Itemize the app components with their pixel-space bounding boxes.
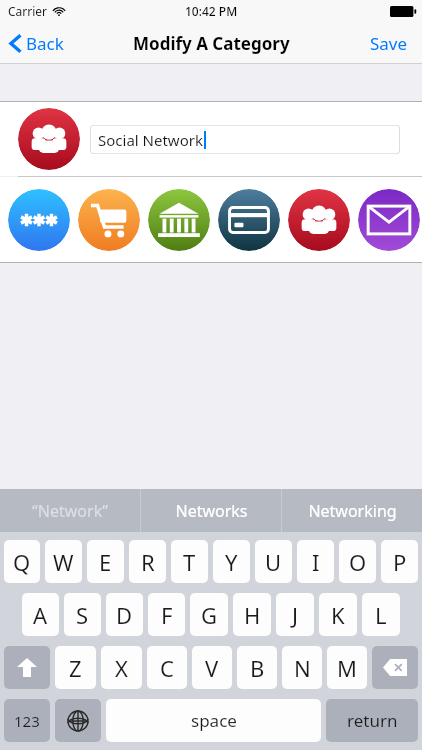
staticText: Y: [225, 547, 238, 577]
button[interactable]: O: [339, 540, 376, 583]
staticText: H: [244, 600, 261, 630]
button[interactable]: Shift: [4, 646, 50, 689]
staticText: Carrier: [8, 3, 48, 19]
staticText: I: [312, 547, 320, 577]
button[interactable]: U: [255, 540, 292, 583]
button[interactable]: Card category: [218, 189, 280, 251]
button[interactable]: E: [87, 540, 124, 583]
button[interactable]: Category icon: [18, 108, 80, 170]
staticText: W: [53, 547, 74, 577]
staticText: S: [76, 600, 89, 630]
staticText: E: [99, 547, 112, 577]
button[interactable]: T: [171, 540, 208, 583]
button[interactable]: H: [233, 593, 271, 636]
staticText: J: [292, 600, 299, 630]
staticText: space: [191, 709, 237, 732]
staticText: V: [205, 653, 219, 683]
button[interactable]: Networks: [141, 489, 281, 532]
staticText: Modify A Category: [133, 32, 290, 55]
staticText: “Network”: [32, 500, 108, 522]
button[interactable]: Back: [0, 26, 76, 61]
staticText: K: [331, 600, 345, 630]
staticText: G: [201, 600, 218, 630]
staticText: Networking: [308, 500, 397, 522]
button[interactable]: Q: [4, 540, 40, 583]
button[interactable]: Y: [213, 540, 250, 583]
button[interactable]: Social Network: [90, 125, 400, 154]
staticText: Save: [370, 32, 408, 55]
staticText: L: [375, 600, 387, 630]
button[interactable]: Email category: [358, 189, 420, 251]
staticText: O: [349, 547, 367, 577]
button[interactable]: Shopping category: [78, 189, 140, 251]
button[interactable]: D: [106, 593, 143, 636]
button[interactable]: Save: [356, 24, 422, 63]
staticText: B: [250, 653, 265, 683]
button[interactable]: V: [192, 646, 232, 689]
button[interactable]: K: [319, 593, 357, 636]
button[interactable]: W: [45, 540, 82, 583]
staticText: 10:42 PM: [185, 3, 238, 19]
button[interactable]: Switch keyboard: [55, 699, 101, 742]
button[interactable]: A: [22, 593, 59, 636]
staticText: Q: [13, 547, 31, 577]
button[interactable]: P: [381, 540, 418, 583]
button[interactable]: R: [129, 540, 166, 583]
staticText: R: [141, 547, 155, 577]
button[interactable]: N: [282, 646, 322, 689]
button[interactable]: G: [190, 593, 228, 636]
staticText: U: [265, 547, 282, 577]
staticText: Social Network: [98, 130, 203, 150]
staticText: P: [393, 547, 407, 577]
staticText: X: [115, 653, 128, 683]
staticText: T: [183, 547, 196, 577]
button[interactable]: Password category: [8, 189, 70, 251]
button[interactable]: return: [326, 699, 418, 742]
button[interactable]: C: [147, 646, 187, 689]
button[interactable]: B: [237, 646, 277, 689]
staticText: 123: [14, 711, 40, 731]
button[interactable]: space: [106, 699, 321, 742]
button[interactable]: F: [148, 593, 185, 636]
button[interactable]: M: [327, 646, 367, 689]
staticText: Networks: [175, 500, 248, 522]
button[interactable]: Bank category: [148, 189, 210, 251]
button[interactable]: Social category: [288, 189, 350, 251]
button[interactable]: 123: [4, 699, 50, 742]
button[interactable]: J: [276, 593, 314, 636]
staticText: D: [116, 600, 133, 630]
staticText: Z: [69, 653, 82, 683]
staticText: A: [33, 600, 48, 630]
button[interactable]: Z: [55, 646, 96, 689]
button[interactable]: X: [101, 646, 142, 689]
staticText: F: [161, 600, 173, 630]
staticText: return: [347, 709, 398, 732]
button[interactable]: Networking: [282, 489, 422, 532]
button[interactable]: “Network”: [0, 489, 140, 532]
staticText: Back: [26, 32, 64, 55]
staticText: N: [294, 653, 311, 683]
button[interactable]: S: [64, 593, 101, 636]
button[interactable]: L: [362, 593, 400, 636]
button[interactable]: Backspace: [372, 646, 418, 689]
button[interactable]: I: [297, 540, 334, 583]
staticText: C: [160, 653, 174, 683]
staticText: M: [337, 653, 357, 683]
